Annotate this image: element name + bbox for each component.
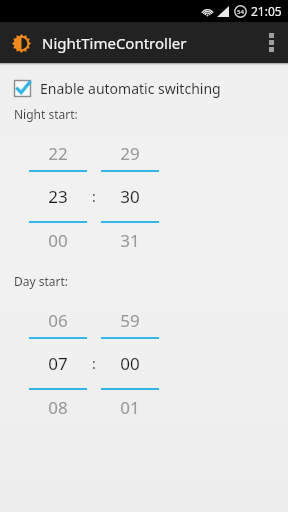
staticText: 08 (48, 396, 68, 419)
staticText: 00 (120, 352, 140, 375)
staticText: 29 (120, 142, 140, 165)
staticText: Day start: (14, 273, 69, 289)
staticText: 30 (120, 185, 140, 208)
staticText: 00 (48, 229, 68, 252)
staticText: Enable automatic switching (40, 79, 221, 98)
staticText: 07 (48, 352, 68, 375)
staticText: 01 (120, 396, 140, 419)
staticText: 06 (48, 309, 68, 332)
button[interactable]: 06 (29, 303, 87, 424)
staticText: 21:05 (251, 3, 282, 19)
staticText: 59 (120, 309, 140, 332)
staticText: 23 (48, 185, 68, 208)
button[interactable]: More options (254, 22, 288, 63)
staticText: 54 (237, 8, 244, 16)
button[interactable]: 29 (101, 136, 159, 257)
staticText: 31 (120, 229, 140, 252)
staticText: 22 (48, 142, 68, 165)
staticText: : (92, 354, 96, 373)
button[interactable]: 59 (101, 303, 159, 424)
button[interactable]: 22 (29, 136, 87, 257)
button[interactable]: Enable automatic switching (14, 79, 274, 98)
staticText: Night start: (14, 106, 78, 122)
staticText: : (92, 187, 96, 206)
staticText: NightTimeController (42, 33, 187, 53)
